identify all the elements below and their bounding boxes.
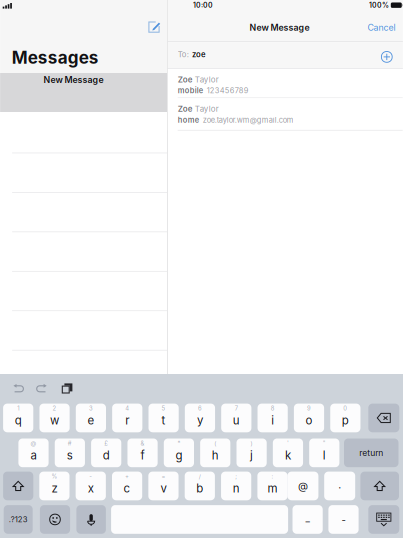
- staticText: =: [161, 473, 165, 480]
- button[interactable]: Space: [111, 505, 288, 534]
- button[interactable]: Dictate: [76, 505, 106, 534]
- staticText: /: [199, 473, 201, 480]
- staticText: 100%: [369, 1, 389, 9]
- button[interactable]: Zoe: [168, 69, 403, 98]
- button[interactable]: &: [127, 438, 158, 467]
- staticText: zoe: [192, 50, 206, 59]
- button[interactable]: %: [39, 472, 69, 500]
- staticText: y: [197, 413, 203, 427]
- staticText: #: [68, 440, 72, 447]
- staticText: 0: [343, 405, 347, 412]
- staticText: New Message: [249, 22, 309, 33]
- button[interactable]: 3: [76, 404, 106, 432]
- button[interactable]: return: [344, 438, 398, 467]
- staticText: -: [341, 514, 345, 525]
- staticText: l: [323, 448, 326, 462]
- button[interactable]: @: [287, 472, 318, 500]
- staticText: Messages: [12, 47, 99, 68]
- staticText: t: [162, 413, 166, 427]
- button[interactable]: £: [91, 438, 121, 467]
- staticText: Zoe: [178, 104, 193, 114]
- button[interactable]: (: [200, 438, 230, 467]
- staticText: h: [212, 448, 219, 462]
- staticText: 9: [307, 405, 311, 412]
- button[interactable]: Compose: [146, 19, 163, 35]
- button[interactable]: New Message: [0, 73, 167, 112]
- button[interactable]: Emoji: [40, 505, 70, 534]
- staticText: 4: [125, 405, 129, 412]
- button[interactable]: ): [236, 438, 267, 467]
- staticText: Zoe: [178, 75, 193, 84]
- staticText: ): [251, 440, 253, 447]
- button[interactable]: Redo: [33, 381, 50, 396]
- staticText: mobile: [178, 86, 203, 95]
- button[interactable]: =: [148, 472, 179, 500]
- staticText: Taylor: [193, 104, 219, 114]
- staticText: ;: [235, 473, 237, 480]
- button[interactable]: #: [55, 438, 85, 467]
- staticText: u: [233, 413, 240, 427]
- button[interactable]: /: [185, 472, 215, 500]
- staticText: ': [287, 440, 289, 447]
- button[interactable]: @: [18, 438, 49, 467]
- staticText: home: [178, 115, 199, 124]
- staticText: v: [160, 481, 166, 495]
- button[interactable]: Shift: [3, 472, 33, 500]
- staticText: 1: [17, 405, 19, 412]
- button[interactable]: 4: [112, 404, 142, 432]
- staticText: b: [196, 481, 203, 495]
- staticText: ": [323, 440, 326, 447]
- staticText: New Message: [43, 74, 103, 85]
- button[interactable]: _: [292, 505, 323, 534]
- button[interactable]: 1: [3, 404, 33, 432]
- button[interactable]: -: [76, 472, 106, 500]
- staticText: 2: [53, 405, 57, 412]
- button[interactable]: ': [273, 438, 303, 467]
- staticText: f: [141, 448, 145, 462]
- staticText: 10:00: [193, 1, 213, 9]
- button[interactable]: Undo: [10, 381, 27, 396]
- staticText: +: [125, 473, 129, 480]
- staticText: .: [338, 478, 341, 491]
- button[interactable]: Add contact: [379, 49, 395, 65]
- staticText: e: [87, 413, 94, 427]
- button[interactable]: ;: [221, 472, 251, 500]
- button[interactable]: ": [309, 438, 339, 467]
- staticText: q: [15, 413, 22, 427]
- staticText: return: [359, 448, 383, 458]
- staticText: r: [125, 413, 129, 427]
- button[interactable]: :: [257, 472, 288, 500]
- button[interactable]: .?123: [4, 505, 33, 534]
- staticText: 6: [198, 405, 202, 412]
- staticText: zoe.taylor.wm@gmail.com: [199, 115, 294, 124]
- staticText: %: [51, 473, 57, 480]
- staticText: m: [267, 481, 277, 495]
- button[interactable]: Delete: [368, 404, 399, 432]
- staticText: 7: [235, 405, 238, 412]
- button[interactable]: *: [164, 438, 194, 467]
- staticText: Taylor: [193, 75, 219, 84]
- button[interactable]: 9: [294, 404, 324, 432]
- button[interactable]: Shift: [360, 472, 399, 500]
- button[interactable]: -: [328, 505, 359, 534]
- button[interactable]: 6: [185, 404, 215, 432]
- button[interactable]: .: [324, 472, 355, 500]
- button[interactable]: Cancel: [363, 18, 399, 37]
- button[interactable]: Zoe: [168, 98, 403, 131]
- staticText: :: [271, 473, 273, 480]
- button[interactable]: 8: [258, 404, 288, 432]
- staticText: k: [285, 448, 291, 462]
- button[interactable]: Paste: [59, 380, 75, 396]
- staticText: x: [88, 481, 94, 495]
- staticText: p: [342, 413, 349, 427]
- staticText: d: [103, 448, 110, 462]
- button[interactable]: 0: [330, 404, 360, 432]
- button[interactable]: Hide keyboard: [368, 505, 399, 534]
- button[interactable]: 2: [39, 404, 70, 432]
- button[interactable]: 7: [221, 404, 251, 432]
- staticText: s: [67, 448, 73, 462]
- staticText: @: [30, 440, 36, 447]
- button[interactable]: 5: [148, 404, 179, 432]
- staticText: i: [271, 413, 274, 427]
- button[interactable]: +: [112, 472, 142, 500]
